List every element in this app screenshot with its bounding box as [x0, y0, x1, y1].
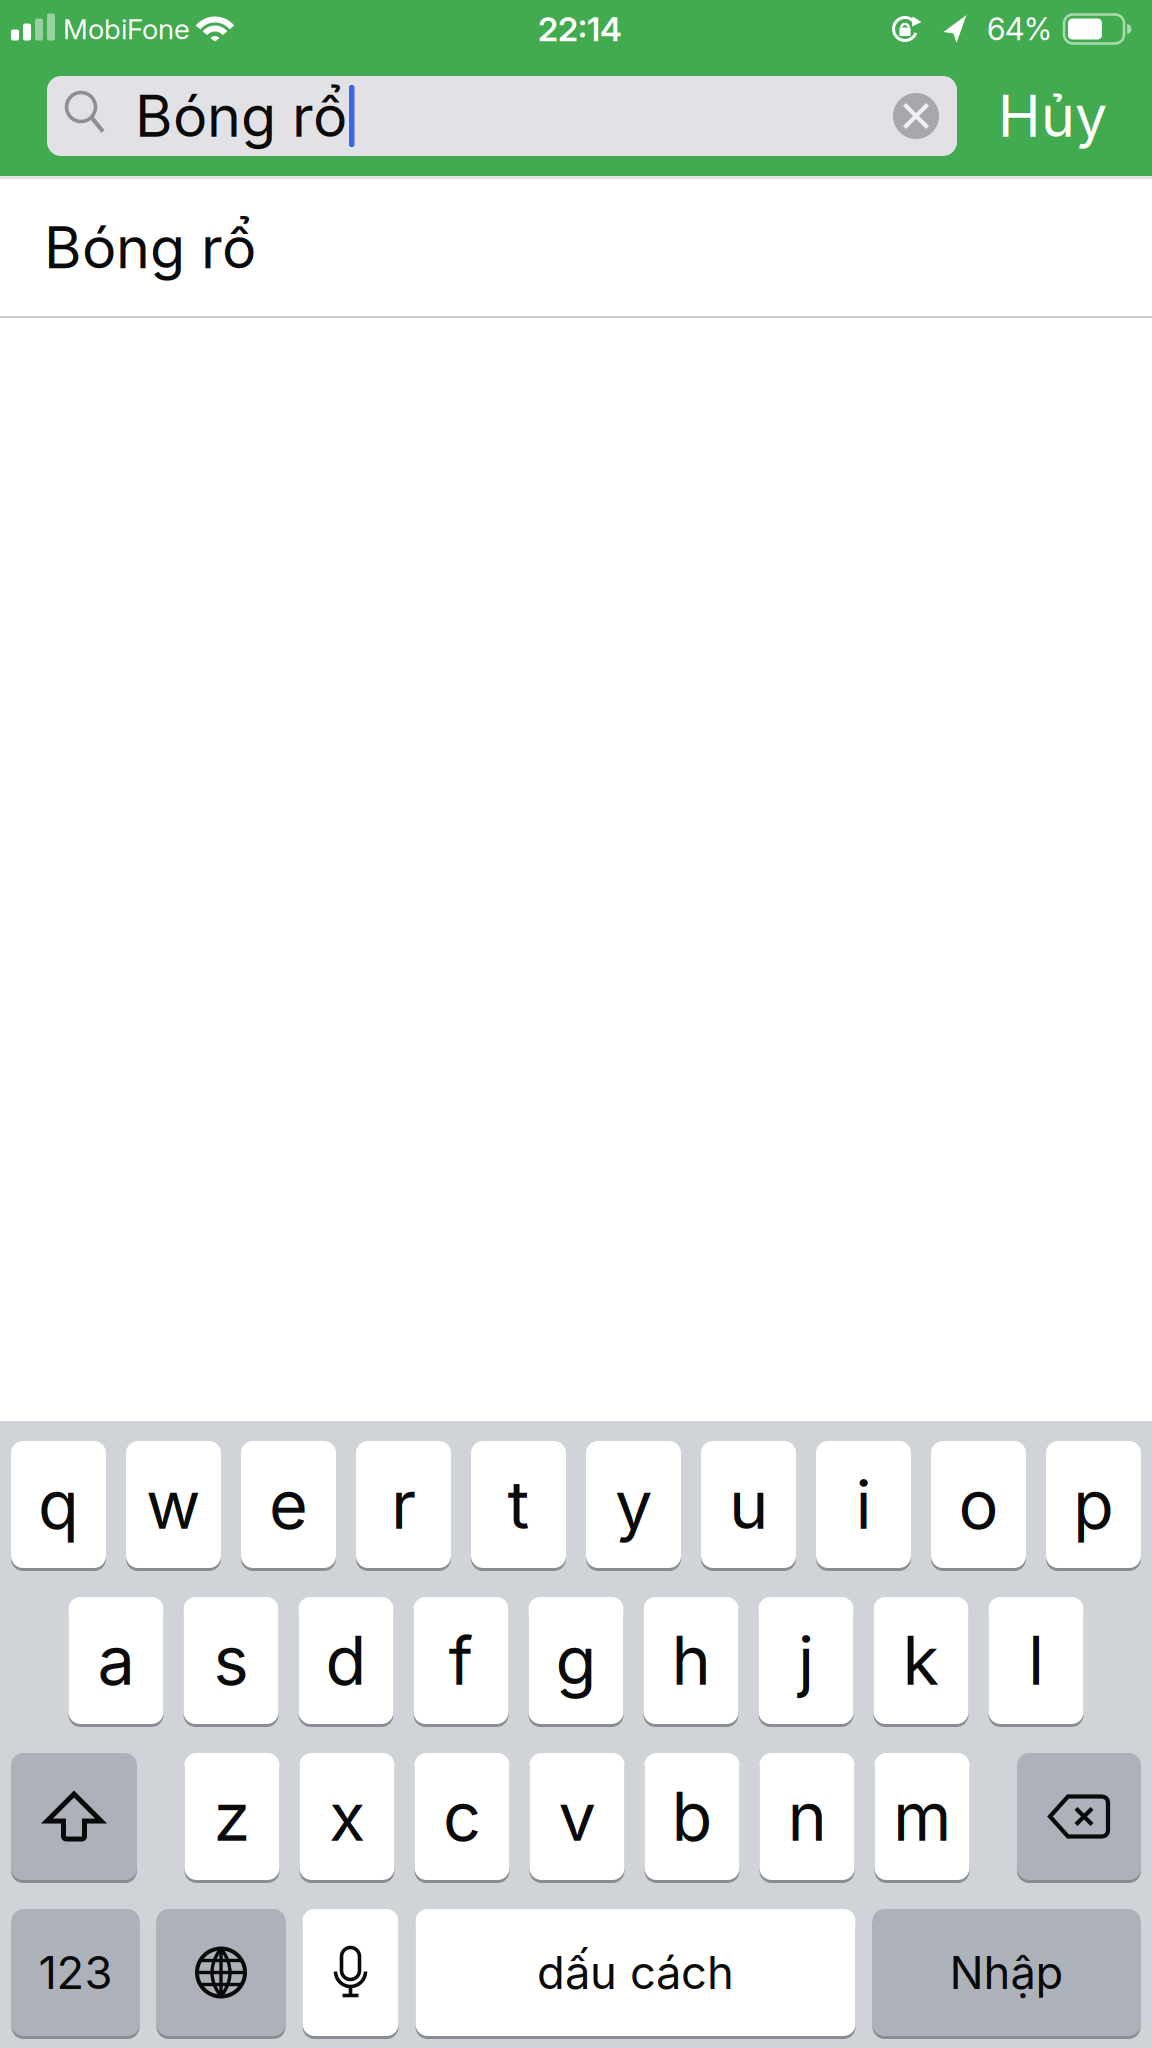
button[interactable]: k — [873, 1597, 968, 1724]
staticText: f — [448, 1620, 473, 1701]
button[interactable]: g — [528, 1597, 623, 1724]
button[interactable]: f — [413, 1597, 508, 1724]
button[interactable]: Dictate — [302, 1909, 398, 2036]
staticText: b — [671, 1776, 712, 1857]
button[interactable]: m — [874, 1753, 969, 1880]
staticText: y — [615, 1464, 652, 1545]
staticText: h — [671, 1620, 710, 1701]
button[interactable]: o — [931, 1441, 1026, 1568]
staticText: d — [325, 1620, 366, 1701]
staticText: m — [893, 1776, 951, 1857]
staticText: c — [443, 1776, 481, 1857]
staticText: l — [1028, 1620, 1044, 1701]
staticText: Bóng rổ — [44, 213, 256, 282]
staticText: q — [38, 1464, 79, 1545]
button[interactable]: j — [758, 1597, 853, 1724]
button[interactable]: Nhập — [872, 1909, 1140, 2036]
staticText: w — [146, 1464, 201, 1545]
button[interactable]: v — [529, 1753, 624, 1880]
staticText: Bóng rổ — [135, 81, 347, 151]
staticText: x — [329, 1776, 365, 1857]
button[interactable]: c — [414, 1753, 509, 1880]
staticText: a — [97, 1620, 134, 1701]
staticText: j — [798, 1620, 814, 1701]
staticText: Nhập — [949, 1945, 1063, 2000]
staticText: s — [213, 1620, 248, 1701]
button[interactable]: Hủy — [998, 81, 1107, 151]
button[interactable]: z — [184, 1753, 279, 1880]
staticText: dấu cách — [537, 1945, 734, 2000]
staticText: MobiFone — [63, 12, 190, 46]
button[interactable]: Clear text — [893, 93, 957, 139]
staticText: 123 — [38, 1945, 112, 2000]
staticText: r — [391, 1464, 416, 1545]
staticText: t — [507, 1464, 529, 1545]
button[interactable]: d — [298, 1597, 393, 1724]
staticText: p — [1073, 1464, 1114, 1545]
staticText: k — [902, 1620, 939, 1701]
button[interactable]: p — [1046, 1441, 1141, 1568]
button[interactable]: dấu cách — [415, 1909, 855, 2036]
button[interactable]: s — [183, 1597, 278, 1724]
button[interactable]: t — [471, 1441, 566, 1568]
button[interactable]: Bóng rổ — [0, 179, 1152, 316]
staticText: o — [958, 1464, 998, 1545]
staticText: n — [787, 1776, 826, 1857]
button[interactable]: Next keyboard — [156, 1909, 285, 2036]
button[interactable]: 123 — [11, 1909, 139, 2036]
button[interactable]: h — [643, 1597, 738, 1724]
staticText: Hủy — [998, 81, 1107, 151]
button[interactable]: i — [816, 1441, 911, 1568]
button[interactable]: q — [11, 1441, 106, 1568]
staticText: i — [855, 1464, 871, 1545]
button[interactable]: x — [299, 1753, 394, 1880]
staticText: 64% — [987, 10, 1052, 47]
button[interactable]: Bóng rổ — [47, 76, 957, 156]
staticText: 22:14 — [538, 9, 622, 49]
button[interactable]: Shift — [11, 1753, 137, 1880]
button[interactable]: a — [68, 1597, 163, 1724]
staticText: g — [555, 1620, 596, 1701]
button[interactable]: l — [988, 1597, 1083, 1724]
staticText: u — [729, 1464, 768, 1545]
button[interactable]: y — [586, 1441, 681, 1568]
button[interactable]: w — [126, 1441, 221, 1568]
button[interactable]: n — [759, 1753, 854, 1880]
staticText: z — [213, 1776, 250, 1857]
button[interactable]: u — [701, 1441, 796, 1568]
button[interactable]: b — [644, 1753, 739, 1880]
button[interactable]: r — [356, 1441, 451, 1568]
staticText: e — [269, 1464, 308, 1545]
staticText: v — [558, 1776, 595, 1857]
button[interactable]: Delete — [1017, 1753, 1141, 1880]
button[interactable]: e — [241, 1441, 336, 1568]
